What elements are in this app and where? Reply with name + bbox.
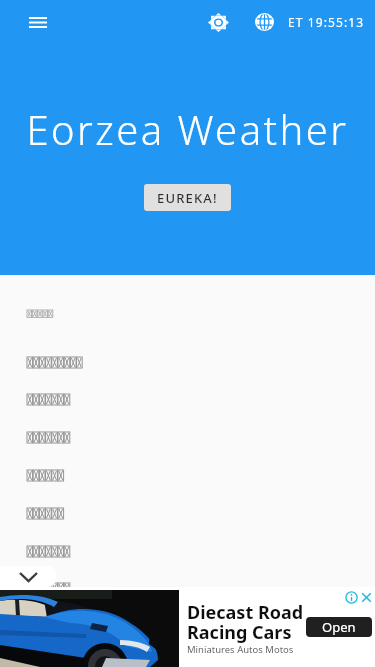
button[interactable]: Menu (18, 2, 58, 42)
staticText: Racing Cars (187, 620, 292, 645)
button[interactable]: Brightness (200, 4, 236, 40)
staticText: Open (322, 618, 356, 636)
button[interactable]: Language (246, 4, 282, 40)
staticText: ET 19:55:13 (288, 14, 365, 30)
staticText: Eorzea Weather (0, 102, 375, 156)
button[interactable]: Collapse (0, 566, 56, 587)
button[interactable]: Ad information (345, 591, 358, 604)
button[interactable]: Open (306, 617, 372, 637)
button[interactable]: Close ad (361, 592, 372, 603)
staticText: Miniatures Autos Motos (187, 643, 294, 656)
staticText: Diecast Road (187, 600, 304, 625)
staticText: EUREKA! (157, 189, 218, 207)
button[interactable]: EUREKA! (144, 184, 231, 211)
